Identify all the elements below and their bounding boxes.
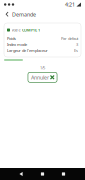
staticText: Index mode [7, 42, 27, 47]
staticText: 3 [76, 42, 78, 47]
staticText: 4:21 [65, 1, 75, 8]
staticText: Votre [11, 27, 20, 33]
staticText: Par defaut [61, 36, 78, 41]
staticText: Poids [7, 36, 16, 41]
button[interactable]: Recent apps [53, 168, 74, 180]
button[interactable]: Home [32, 168, 53, 180]
staticText: Es [74, 48, 78, 53]
staticText: COMPTE 1 [22, 27, 40, 33]
button[interactable]: Back [10, 168, 32, 180]
staticText: Annuler [31, 74, 49, 81]
button[interactable]: Annuler [28, 72, 57, 82]
button[interactable]: Back [3, 9, 12, 20]
staticText: Largeur de l'emplaceur [7, 48, 48, 53]
staticText: 1/5 [40, 65, 45, 70]
staticText: Demande [12, 11, 36, 18]
